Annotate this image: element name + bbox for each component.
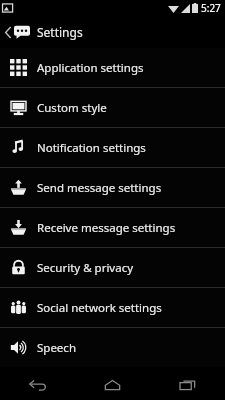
- staticText: Send message settings: [37, 180, 162, 196]
- staticText: 5:27: [201, 1, 221, 15]
- button[interactable]: Notification settings: [0, 128, 225, 167]
- button[interactable]: Back to Settings: [0, 16, 225, 48]
- button[interactable]: Send message settings: [0, 168, 225, 207]
- staticText: Application settings: [37, 60, 144, 76]
- staticText: Receive message settings: [37, 220, 176, 236]
- button[interactable]: Social network settings: [0, 288, 225, 327]
- button[interactable]: Back: [0, 370, 75, 400]
- button[interactable]: Security & privacy: [0, 248, 225, 287]
- button[interactable]: Receive message settings: [0, 208, 225, 247]
- button[interactable]: Speech: [0, 328, 225, 367]
- button[interactable]: Recent apps: [150, 370, 225, 400]
- staticText: Social network settings: [37, 300, 162, 316]
- staticText: Notification settings: [37, 140, 146, 156]
- staticText: Security & privacy: [37, 260, 134, 276]
- button[interactable]: Home: [75, 370, 150, 400]
- staticText: Speech: [37, 340, 76, 356]
- staticText: Custom style: [37, 100, 107, 116]
- button[interactable]: Application settings: [0, 48, 225, 87]
- button[interactable]: Custom style: [0, 88, 225, 127]
- staticText: Settings: [37, 24, 83, 40]
